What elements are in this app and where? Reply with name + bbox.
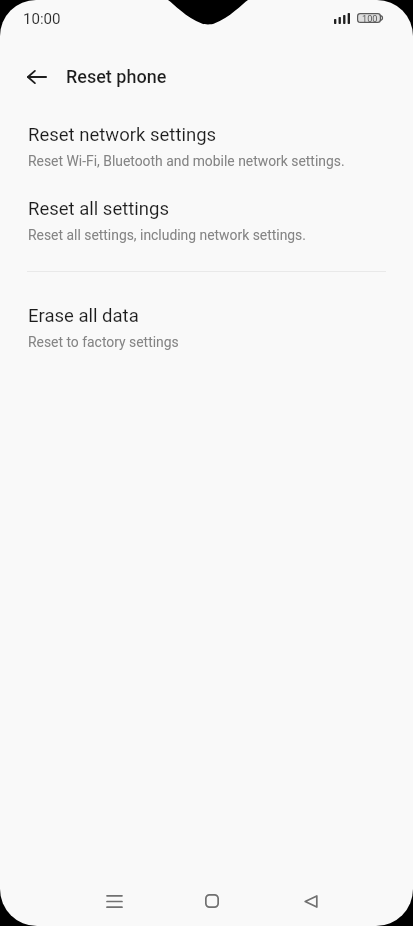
staticText: Reset phone [66,66,167,87]
button[interactable]: Back [15,55,59,99]
staticText: 10:00 [23,10,61,28]
staticText: Reset to factory settings [28,334,179,350]
button[interactable]: Reset all settings [0,198,413,243]
button[interactable]: Back [284,874,338,926]
staticText: Reset Wi-Fi, Bluetooth and mobile networ… [28,153,345,169]
staticText: Erase all data [28,305,139,327]
button[interactable]: Home [185,874,239,926]
button[interactable]: Recent apps [87,874,141,926]
staticText: Reset all settings, including network se… [28,227,306,243]
button[interactable]: Reset network settings [0,124,413,169]
staticText: Reset all settings [28,198,169,220]
button[interactable]: Erase all data [0,305,413,350]
staticText: 100 [362,13,378,23]
staticText: Reset network settings [28,124,217,146]
